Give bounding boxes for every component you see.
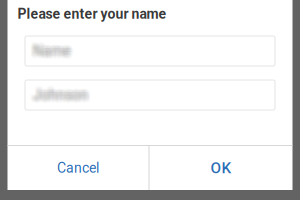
staticText: Johnson [31, 85, 86, 102]
staticText: Name [31, 46, 68, 62]
button[interactable]: Cancel [7, 146, 148, 190]
staticText: Johnson [33, 90, 88, 106]
staticText: Name [34, 46, 71, 62]
staticText: Johnson [34, 87, 89, 103]
staticText: Johnson [35, 90, 90, 106]
staticText: Name [31, 44, 68, 61]
staticText: Name [34, 41, 71, 58]
staticText: Name [35, 44, 72, 61]
staticText: Johnson [30, 89, 85, 105]
staticText: Please enter your name [17, 6, 166, 22]
button[interactable]: OK [149, 146, 292, 190]
staticText: Johnson [35, 84, 90, 100]
staticText: Johnson [32, 85, 87, 102]
staticText: Johnson [30, 85, 85, 101]
staticText: Name [32, 40, 69, 56]
staticText: Name [30, 45, 67, 61]
staticText: Name [31, 43, 68, 59]
staticText: Name [34, 44, 71, 61]
staticText: Johnson [32, 90, 87, 106]
staticText: Name [37, 43, 74, 59]
staticText: Johnson [34, 90, 89, 106]
staticText: Name [30, 43, 67, 59]
staticText: Johnson [36, 85, 91, 101]
staticText: Name [33, 40, 70, 56]
staticText: Johnson [30, 87, 85, 103]
staticText: Johnson [31, 84, 86, 100]
staticText: Johnson [29, 87, 84, 103]
staticText: Johnson [33, 85, 88, 102]
staticText: Johnson [36, 87, 91, 103]
staticText: Cancel [57, 160, 99, 176]
staticText: Name [34, 40, 71, 56]
staticText: Johnson [31, 87, 86, 103]
staticText: Johnson [37, 87, 92, 103]
staticText: Johnson [34, 85, 89, 102]
staticText: Name [33, 44, 70, 61]
staticText: Name [36, 41, 73, 57]
staticText: Johnson [33, 88, 88, 105]
staticText: Johnson [35, 88, 90, 105]
staticText: Name [32, 41, 69, 58]
staticText: Name [35, 41, 72, 58]
staticText: Johnson [34, 84, 89, 100]
staticText: Johnson [32, 88, 87, 105]
staticText: Name [31, 40, 68, 56]
staticText: Name [35, 46, 72, 62]
staticText: Johnson [31, 88, 86, 105]
staticText: Johnson [33, 87, 88, 103]
staticText: OK [210, 159, 231, 177]
staticText: Name [30, 41, 67, 57]
staticText: Name [35, 43, 72, 59]
staticText: Name [34, 43, 71, 59]
staticText: Name [36, 43, 73, 59]
staticText: Name [31, 41, 68, 58]
staticText: Name [36, 45, 73, 61]
staticText: Name [32, 46, 69, 62]
staticText: Name [29, 43, 66, 59]
staticText: Johnson [36, 89, 91, 105]
staticText: Name [32, 44, 69, 61]
staticText: Name [32, 43, 69, 59]
staticText: Johnson [35, 85, 90, 102]
staticText: Johnson [32, 87, 87, 103]
staticText: Name [35, 40, 72, 56]
staticText: Johnson [31, 90, 86, 106]
staticText: Johnson [33, 84, 88, 100]
staticText: Name [33, 41, 70, 58]
staticText: Johnson [32, 84, 87, 100]
staticText: Johnson [35, 87, 90, 103]
staticText: Johnson [34, 88, 89, 105]
staticText: Name [33, 43, 70, 59]
staticText: Name [33, 46, 70, 62]
